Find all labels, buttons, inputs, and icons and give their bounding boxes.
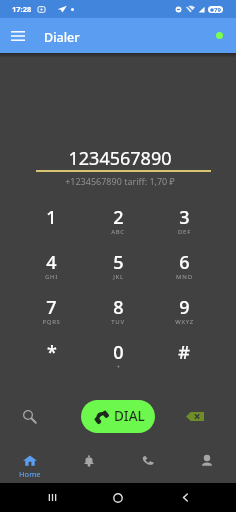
staticText: 0 [113, 340, 124, 365]
staticText: 3 [179, 205, 190, 230]
button[interactable]: Home [0, 446, 59, 483]
staticText: 1 [46, 205, 57, 230]
button[interactable]: Search [0, 392, 59, 440]
staticText: PQRS [42, 318, 61, 326]
staticText: 17:28 [12, 4, 32, 14]
staticText: 4 [46, 250, 57, 275]
staticText: DEF [178, 228, 191, 236]
staticText: 79 [214, 6, 221, 13]
staticText: 9 [179, 295, 190, 320]
staticText: DIAL [114, 407, 145, 425]
staticText: 8 [113, 295, 124, 320]
button[interactable]: DIAL [81, 400, 155, 433]
staticText: MNO [176, 273, 193, 281]
button[interactable]: # [151, 337, 217, 382]
button[interactable]: Calls [118, 446, 177, 483]
button[interactable]: Back [170, 483, 200, 512]
staticText: ABC [111, 228, 125, 236]
button[interactable]: 1 [18, 202, 85, 247]
button[interactable]: 9 [151, 292, 217, 337]
button[interactable]: 0 [85, 337, 151, 382]
button[interactable]: 3 [151, 202, 217, 247]
staticText: 7 [46, 295, 57, 320]
staticText: TUV [111, 318, 125, 326]
staticText: 5 [113, 250, 124, 275]
button[interactable]: Home [103, 483, 133, 512]
button[interactable]: Contacts [177, 446, 236, 483]
staticText: GHI [45, 273, 58, 281]
button[interactable]: Menu [0, 18, 35, 53]
staticText: 6 [179, 250, 190, 275]
staticText: Home [19, 469, 41, 479]
button[interactable]: Notifications [59, 446, 118, 483]
button[interactable]: 8 [85, 292, 151, 337]
button[interactable]: * [18, 337, 85, 382]
staticText: * [47, 340, 57, 365]
button[interactable]: Status [216, 32, 223, 39]
staticText: WXYZ [175, 318, 194, 326]
staticText: +1234567890 tariff: 1,70 ₽ [33, 175, 207, 187]
staticText: # [178, 340, 190, 365]
staticText: 2 [113, 205, 124, 230]
staticText: JKL [113, 273, 124, 281]
button[interactable]: Recents [37, 483, 67, 512]
button[interactable]: 4 [18, 247, 85, 292]
button[interactable]: 5 [85, 247, 151, 292]
button[interactable]: 2 [85, 202, 151, 247]
staticText: Dialer [44, 29, 80, 46]
button[interactable]: 7 [18, 292, 85, 337]
staticText: 1234567890 [33, 146, 207, 171]
staticText: + [116, 363, 121, 371]
button[interactable]: Backspace [177, 392, 236, 440]
button[interactable]: 6 [151, 247, 217, 292]
